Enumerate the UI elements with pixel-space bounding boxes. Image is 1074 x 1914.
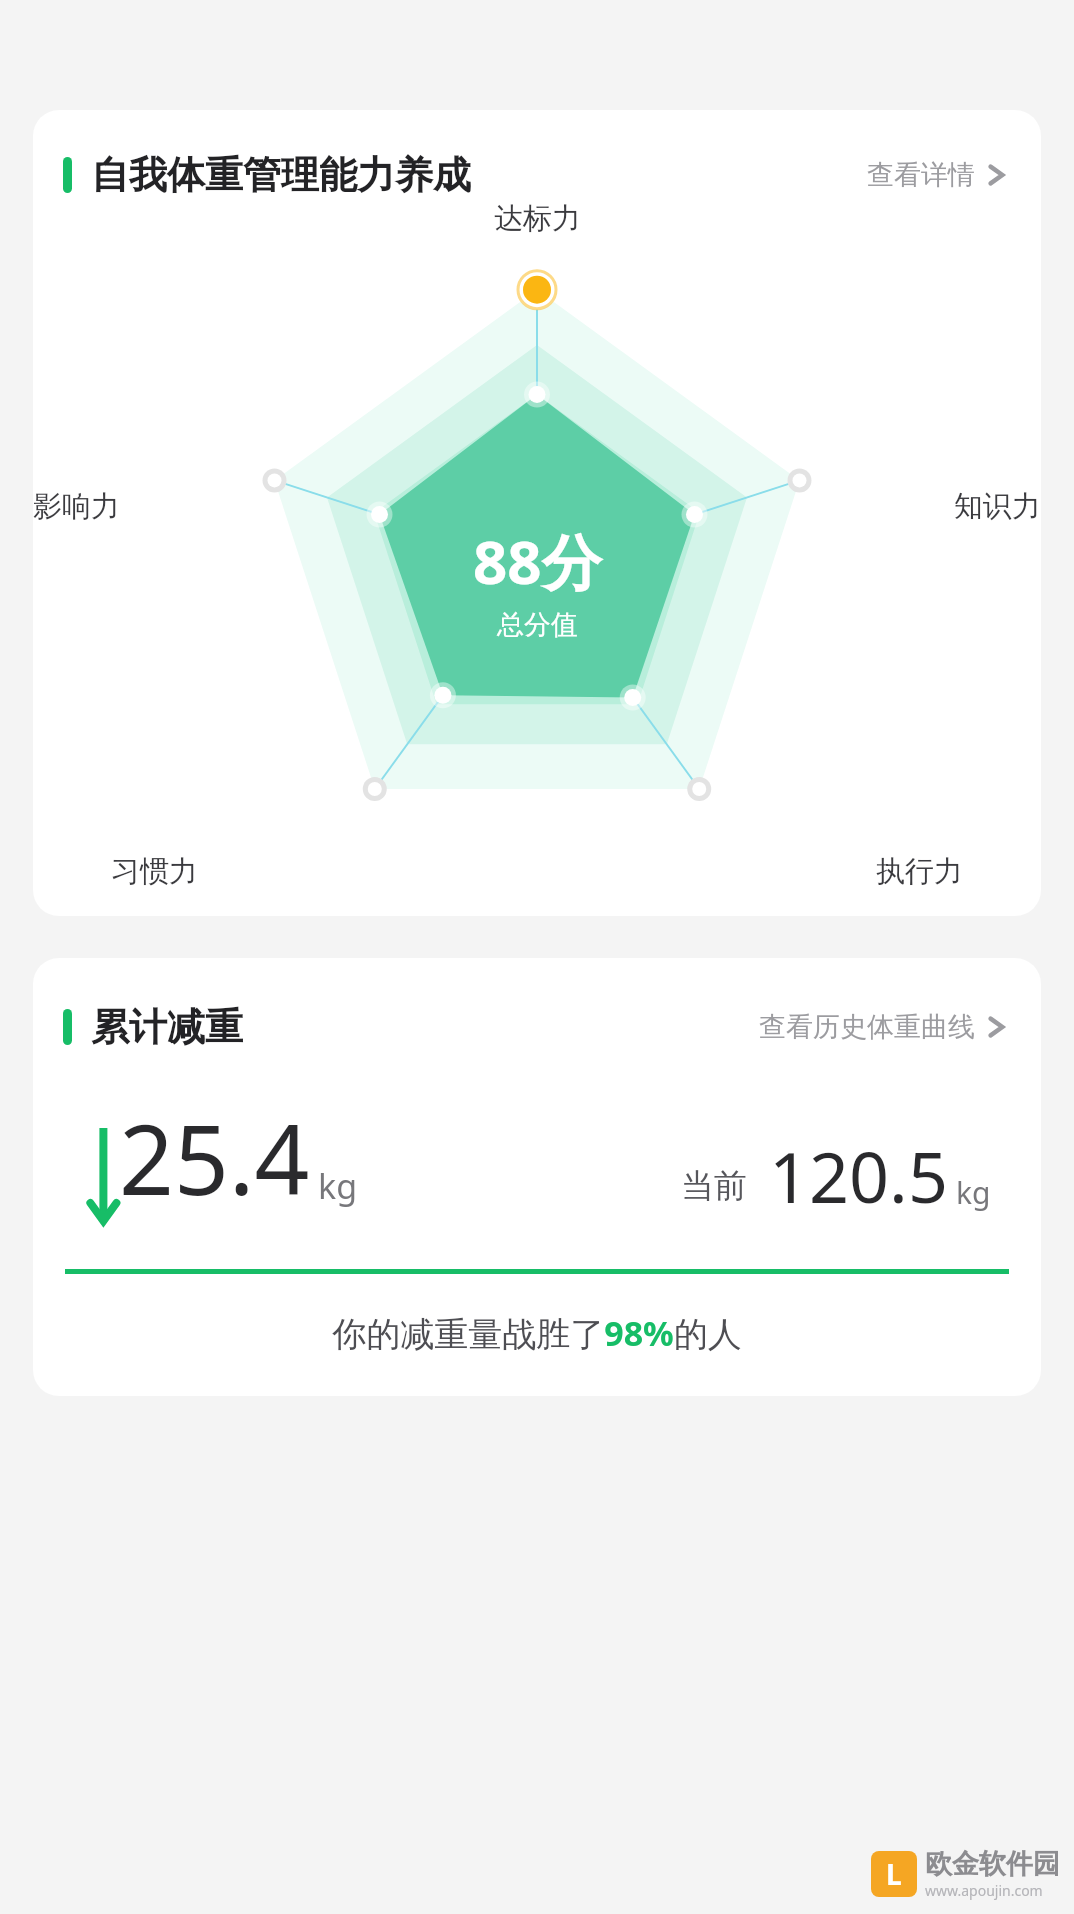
staticText: 执行力 (876, 853, 963, 890)
staticText: 120.5 (769, 1128, 948, 1223)
staticText: 习惯力 (111, 853, 198, 890)
staticText: 达标力 (494, 200, 581, 237)
staticText: www.apoujin.com (925, 1881, 1043, 1900)
staticText: 欧金软件园 (925, 1847, 1060, 1881)
staticText: kg (318, 1163, 358, 1209)
staticText: 知识力 (954, 488, 1041, 525)
staticText: 25.4 (119, 1092, 310, 1223)
button[interactable]: 查看历史体重曲线 (759, 1002, 1005, 1052)
staticText: 查看详情 (867, 158, 975, 192)
staticText: 累计减重 (91, 1003, 243, 1051)
staticText: 你的减重量战胜了98%的人 (33, 1310, 1041, 1356)
button[interactable]: 查看详情 (867, 150, 1005, 200)
staticText: L (886, 1855, 902, 1893)
staticText: 查看历史体重曲线 (759, 1010, 975, 1044)
staticText: 自我体重管理能力养成 (91, 151, 471, 199)
staticText: kg (956, 1172, 991, 1213)
staticText: 当前 (681, 1165, 747, 1207)
staticText: 88分 (473, 520, 602, 602)
staticText: 总分值 (497, 608, 578, 642)
staticText: 影响力 (33, 488, 120, 525)
